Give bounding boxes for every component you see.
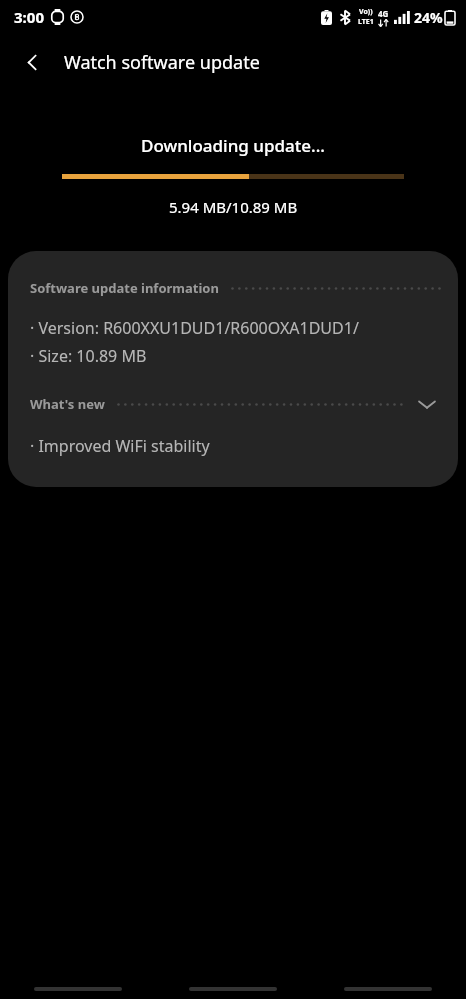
other: Expand What's new — [414, 391, 440, 417]
staticText: Software update information — [30, 279, 219, 297]
staticText: 4G — [378, 8, 389, 19]
staticText: · Size: 10.89 MB — [30, 345, 147, 367]
staticText: 5.94 MB/10.89 MB — [169, 197, 298, 217]
staticText: 3:00 — [14, 7, 44, 27]
staticText: · Improved WiFi stability — [30, 435, 210, 457]
staticText: · Version: R600XXU1DUD1/R600OXA1DUD1/ — [30, 317, 359, 339]
staticText: What's new — [30, 395, 105, 413]
staticText: Vo)) — [359, 7, 373, 17]
button[interactable]: Recents — [32, 971, 124, 991]
staticText: Watch software update — [64, 50, 260, 75]
button[interactable]: Back — [342, 971, 434, 991]
button[interactable]: Home — [187, 971, 279, 991]
button[interactable]: What's new — [30, 391, 440, 417]
staticText: Downloading update... — [141, 134, 325, 157]
staticText: 24% — [414, 8, 443, 27]
button[interactable]: Back — [10, 40, 54, 84]
staticText: LTE1 — [358, 17, 374, 27]
